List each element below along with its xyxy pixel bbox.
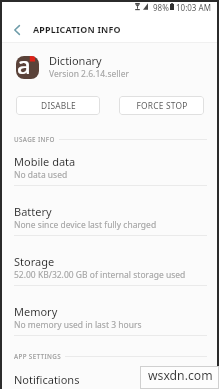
- staticText: APP SETTINGS: [14, 352, 61, 361]
- staticText: Dictionary: [49, 53, 102, 68]
- staticText: None since device last fully charged: [14, 219, 157, 231]
- button[interactable]: Battery: [0, 197, 219, 247]
- staticText: No memory used in last 3 hours: [14, 319, 142, 331]
- staticText: DISABLE: [41, 100, 76, 111]
- staticText: No data used: [14, 169, 68, 181]
- button[interactable]: Navigate up: [5, 17, 29, 42]
- button[interactable]: Notifications: [0, 372, 219, 389]
- button[interactable]: DISABLE: [16, 96, 100, 115]
- staticText: 10:03 AM: [176, 2, 211, 13]
- staticText: USAGE INFO: [14, 135, 55, 144]
- staticText: Mobile data: [14, 154, 76, 169]
- staticText: 98%: [153, 2, 169, 13]
- button[interactable]: Mobile data: [0, 147, 219, 197]
- staticText: Version 2.6.14.seller: [49, 68, 129, 80]
- staticText: Notifications: [14, 372, 80, 387]
- staticText: Battery: [14, 204, 52, 219]
- button[interactable]: Memory: [0, 297, 219, 347]
- staticText: FORCE STOP: [136, 100, 188, 111]
- button[interactable]: Storage: [0, 247, 219, 297]
- staticText: Storage: [14, 254, 55, 269]
- button[interactable]: FORCE STOP: [119, 96, 204, 115]
- staticText: Memory: [14, 304, 58, 319]
- staticText: wsxdn.com: [148, 367, 213, 384]
- staticText: a: [17, 48, 31, 81]
- staticText: 52.00 KB/32.00 GB of internal storage us…: [14, 269, 186, 281]
- staticText: APPLICATION INFO: [33, 23, 121, 35]
